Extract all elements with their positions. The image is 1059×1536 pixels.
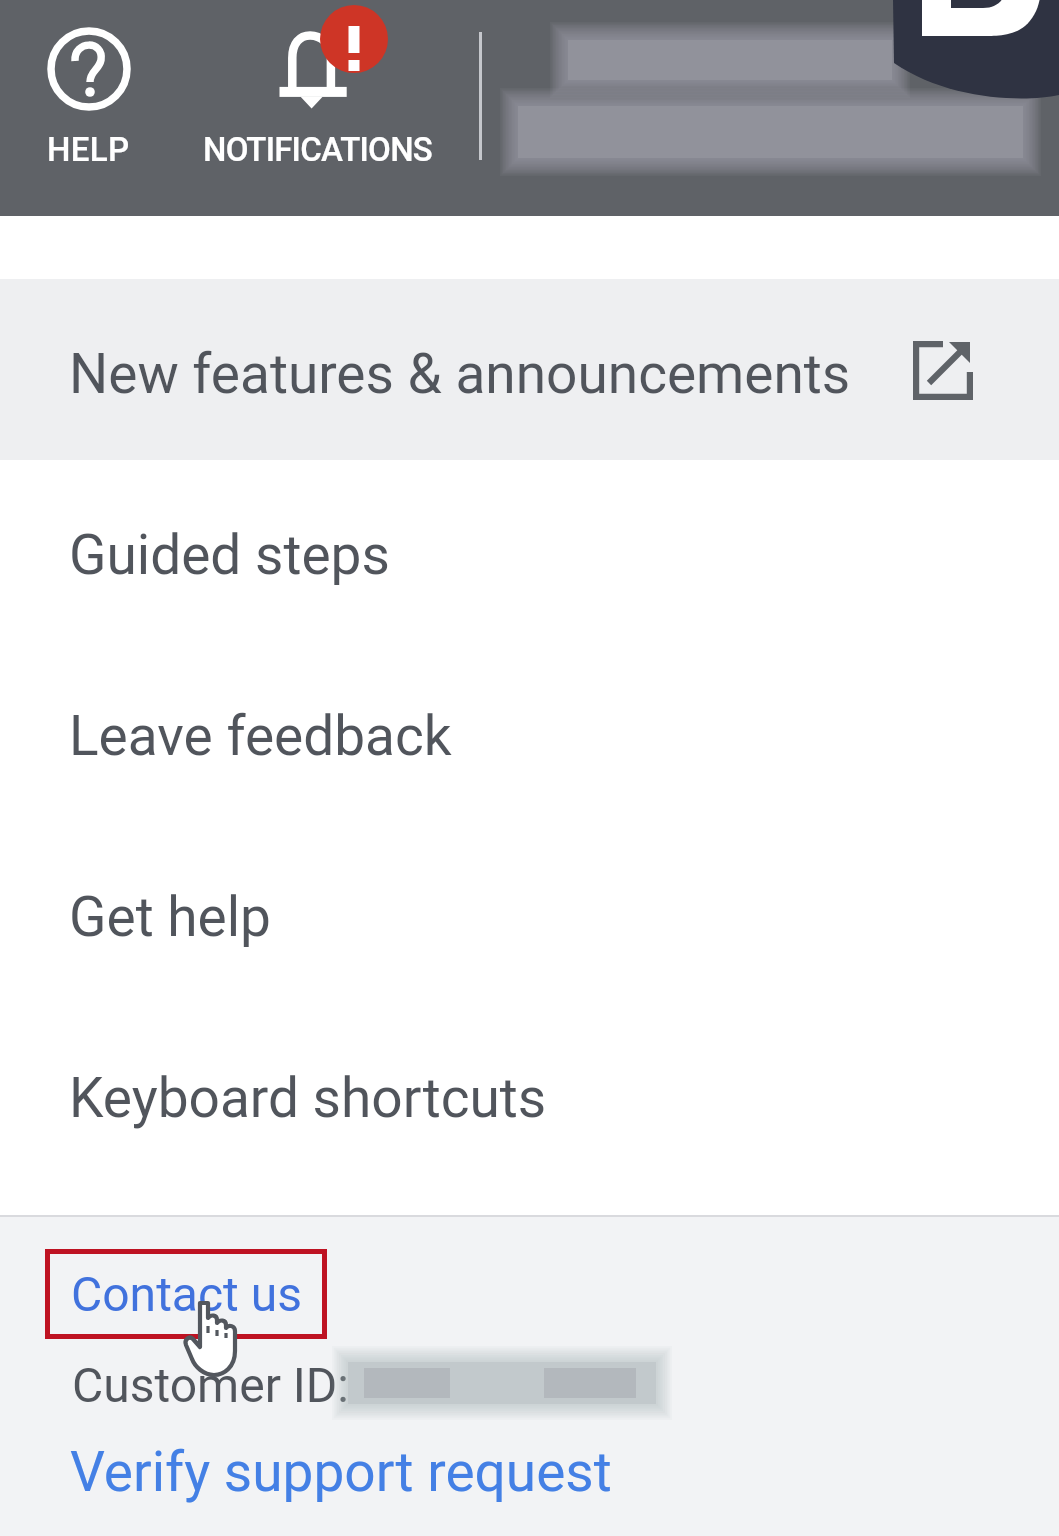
- staticText: Guided steps: [69, 523, 390, 587]
- button[interactable]: Contact us: [45, 1249, 327, 1339]
- staticText: Customer ID:: [72, 1357, 349, 1413]
- button[interactable]: Help: [22, 8, 156, 172]
- staticText: Get help: [69, 885, 271, 949]
- staticText: Contact us: [71, 1266, 302, 1322]
- button[interactable]: New features & announcements: [0, 279, 1059, 460]
- staticText: Leave feedback: [69, 704, 452, 768]
- other: Opens in a new window: [913, 341, 973, 400]
- button[interactable]: Keyboard shortcuts: [0, 1003, 1059, 1184]
- button[interactable]: Google Account: [893, 0, 1059, 97]
- button[interactable]: Notifications: [186, 8, 444, 172]
- button[interactable]: Leave feedback: [0, 641, 1059, 822]
- staticText: New features & announcements: [69, 342, 851, 406]
- button[interactable]: Get help: [0, 822, 1059, 1003]
- staticText: HELP: [47, 130, 130, 169]
- staticText: Verify support request: [70, 1440, 612, 1504]
- staticText: Keyboard shortcuts: [69, 1066, 547, 1130]
- button[interactable]: Guided steps: [0, 460, 1059, 641]
- staticText: NOTIFICATIONS: [203, 130, 433, 169]
- button[interactable]: Verify support request: [70, 1436, 612, 1510]
